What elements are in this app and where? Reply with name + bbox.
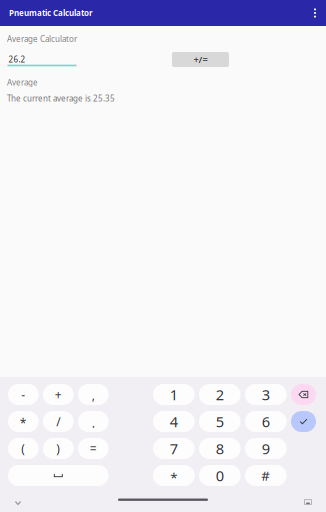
- staticText: *: [170, 469, 177, 486]
- button[interactable]: .: [78, 411, 109, 432]
- button[interactable]: 5: [199, 411, 241, 432]
- button[interactable]: =: [78, 438, 109, 459]
- staticText: 6: [262, 412, 270, 431]
- button[interactable]: 3: [245, 384, 287, 405]
- staticText: 8: [216, 439, 224, 458]
- button[interactable]: Space: [8, 465, 109, 486]
- staticText: 5: [216, 412, 224, 431]
- button[interactable]: ,: [78, 384, 109, 405]
- button[interactable]: *: [8, 411, 39, 432]
- button[interactable]: ): [43, 438, 74, 459]
- staticText: -: [21, 386, 25, 402]
- staticText: =: [90, 440, 97, 456]
- button[interactable]: Enter: [291, 411, 316, 432]
- staticText: 1: [170, 385, 178, 404]
- staticText: 0: [216, 466, 224, 485]
- button[interactable]: 4: [153, 411, 195, 432]
- button[interactable]: 0: [199, 465, 241, 486]
- button[interactable]: Backspace: [291, 384, 316, 405]
- button[interactable]: 2: [199, 384, 241, 405]
- staticText: .: [92, 415, 95, 431]
- button[interactable]: 1: [153, 384, 195, 405]
- staticText: (: [21, 440, 25, 456]
- staticText: /: [56, 413, 60, 429]
- staticText: Average Calculator: [7, 33, 77, 44]
- button[interactable]: 6: [245, 411, 287, 432]
- button[interactable]: -: [8, 384, 39, 405]
- staticText: *: [20, 415, 27, 431]
- staticText: Pneumatic Calculator: [9, 8, 93, 18]
- button[interactable]: +: [43, 384, 74, 405]
- staticText: #: [261, 467, 270, 484]
- staticText: 9: [262, 439, 270, 458]
- button[interactable]: +/=: [172, 52, 229, 67]
- button[interactable]: /: [43, 411, 74, 432]
- staticText: +/=: [193, 53, 207, 66]
- button[interactable]: (: [8, 438, 39, 459]
- staticText: +: [55, 386, 62, 402]
- button[interactable]: #: [245, 465, 287, 486]
- staticText: ): [56, 440, 60, 456]
- button[interactable]: Hide keyboard: [6, 493, 30, 512]
- button[interactable]: Switch keyboard: [296, 492, 320, 512]
- button[interactable]: More options: [304, 0, 326, 26]
- staticText: 4: [170, 412, 178, 431]
- button[interactable]: 7: [153, 438, 195, 459]
- staticText: The current average is 25.35: [7, 93, 115, 104]
- staticText: 26.2: [8, 54, 25, 65]
- staticText: Average: [7, 77, 38, 88]
- staticText: 3: [262, 385, 270, 404]
- staticText: ,: [92, 387, 95, 403]
- button[interactable]: 8: [199, 438, 241, 459]
- staticText: 2: [216, 385, 224, 404]
- button[interactable]: *: [153, 465, 195, 486]
- staticText: 7: [170, 439, 178, 458]
- button[interactable]: 9: [245, 438, 287, 459]
